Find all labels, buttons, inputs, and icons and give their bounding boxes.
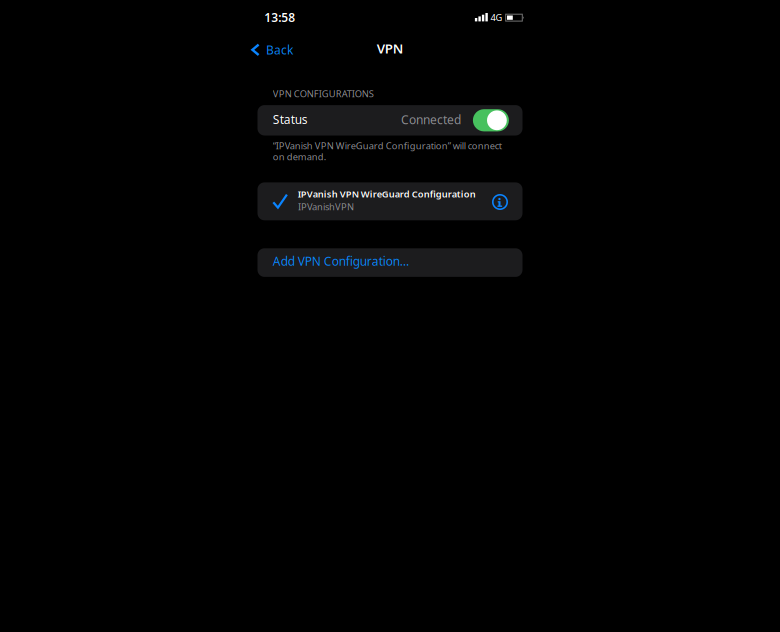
staticText: on demand.: [273, 150, 327, 163]
staticText: Connected: [401, 111, 461, 127]
button[interactable]: Status, Connected: [473, 109, 509, 131]
staticText: Back: [266, 42, 293, 58]
staticText: 13:58: [264, 9, 295, 25]
staticText: 4G: [490, 11, 502, 24]
staticText: VPN: [377, 39, 404, 57]
button[interactable]: Back: [251, 42, 293, 58]
staticText: Status: [273, 111, 308, 127]
button[interactable]: Add VPN Configuration…: [257, 248, 522, 277]
staticText: VPN CONFIGURATIONS: [273, 87, 374, 100]
button[interactable]: More Info: [485, 187, 515, 217]
button[interactable]: IPVanish VPN WireGuard Configuration: [257, 182, 522, 220]
staticText: Add VPN Configuration…: [273, 253, 409, 269]
staticText: “IPVanish VPN WireGuard Configuration” w…: [273, 139, 502, 152]
staticText: IPVanish VPN WireGuard Configuration: [298, 188, 476, 200]
staticText: IPVanishVPN: [298, 200, 354, 213]
